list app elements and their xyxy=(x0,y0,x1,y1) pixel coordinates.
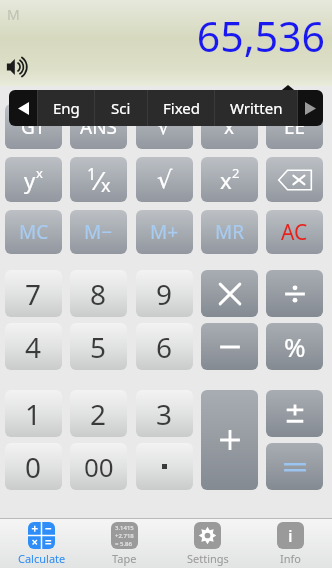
button[interactable]: 4 xyxy=(5,323,62,370)
staticText: GT xyxy=(21,114,46,140)
button[interactable]: 1 xyxy=(70,157,127,202)
button[interactable]: Subtract xyxy=(201,323,258,370)
button[interactable]: 00 xyxy=(70,443,127,490)
staticText: 1 xyxy=(87,163,97,185)
staticText: MC xyxy=(19,219,49,245)
staticText: 8 xyxy=(90,275,107,313)
staticText: 0 xyxy=(25,448,42,486)
button[interactable]: 1 xyxy=(5,390,62,437)
button[interactable]: 8 xyxy=(70,270,127,317)
other: Divide xyxy=(282,281,308,307)
button[interactable]: Delete xyxy=(266,157,323,202)
button[interactable]: Fixed xyxy=(148,90,214,126)
button[interactable]: EE xyxy=(266,104,323,149)
button[interactable]: √ xyxy=(136,157,193,202)
button[interactable]: 2 xyxy=(70,390,127,437)
button[interactable]: Multiply xyxy=(201,270,258,317)
button[interactable]: x xyxy=(201,157,258,202)
other: Equals xyxy=(282,459,308,475)
button[interactable]: Previous xyxy=(9,90,37,126)
button[interactable]: 7 xyxy=(5,270,62,317)
staticText: Settings xyxy=(187,551,229,566)
button[interactable]: Add xyxy=(201,390,258,490)
staticText: √ xyxy=(158,116,171,138)
staticText: % xyxy=(284,329,306,364)
staticText: = 5.86 xyxy=(115,540,132,548)
button[interactable]: Written xyxy=(215,90,297,126)
button[interactable]: MC xyxy=(5,210,62,254)
staticText: Eng xyxy=(53,98,80,118)
button[interactable]: Info xyxy=(249,519,332,568)
staticText: x xyxy=(36,164,43,182)
staticText: 9 xyxy=(156,275,173,313)
staticText: Info xyxy=(280,551,301,566)
staticText: +2.718 xyxy=(115,532,134,540)
button[interactable]: ANS xyxy=(70,104,127,149)
button[interactable]: 6 xyxy=(136,323,193,370)
button[interactable]: M− xyxy=(70,210,127,254)
staticText: i xyxy=(288,524,293,547)
button[interactable]: Sci xyxy=(95,90,147,126)
staticText: 5 xyxy=(90,328,107,366)
button[interactable]: x xyxy=(201,104,258,149)
staticText: 65,536 xyxy=(196,8,325,64)
button[interactable]: M+ xyxy=(136,210,193,254)
other: Subtract xyxy=(217,334,243,360)
button[interactable]: 5 xyxy=(70,323,127,370)
staticText: 3 xyxy=(156,395,173,433)
button[interactable]: Next xyxy=(298,90,323,126)
button[interactable]: √ xyxy=(136,104,193,149)
button[interactable]: Eng xyxy=(38,90,94,126)
staticText: EE xyxy=(284,114,306,140)
staticText: x xyxy=(224,114,235,140)
button[interactable]: GT xyxy=(5,104,62,149)
button[interactable]: Plus minus xyxy=(266,390,323,437)
staticText: 3.1415 xyxy=(115,524,134,532)
other: Add xyxy=(217,427,243,453)
staticText: x xyxy=(101,173,111,198)
staticText: 6 xyxy=(156,328,173,366)
staticText: 4 xyxy=(25,328,42,366)
staticText: ⁄ xyxy=(97,162,101,197)
button[interactable]: Calculate xyxy=(0,519,83,568)
other: Delete xyxy=(278,169,312,191)
button[interactable]: Equals xyxy=(266,443,323,490)
button[interactable]: Divide xyxy=(266,270,323,317)
staticText: 7 xyxy=(25,275,42,313)
button[interactable]: 9 xyxy=(136,270,193,317)
other: Multiply xyxy=(217,281,243,307)
staticText: ANS xyxy=(80,114,118,140)
button[interactable]: % xyxy=(266,323,323,370)
staticText: 2 xyxy=(90,395,107,433)
staticText: x xyxy=(220,165,232,195)
staticText: Written xyxy=(230,98,283,118)
staticText: √ xyxy=(157,166,173,194)
button[interactable] xyxy=(136,443,193,490)
other: Settings xyxy=(194,522,221,549)
button[interactable]: 3.1415 xyxy=(83,519,166,568)
staticText: Calculate xyxy=(18,551,66,566)
button[interactable]: y xyxy=(5,157,62,202)
button[interactable]: 3 xyxy=(136,390,193,437)
staticText: Tape xyxy=(112,551,137,566)
staticText: 1 xyxy=(25,395,42,433)
staticText: M xyxy=(7,5,20,24)
other: Sound xyxy=(6,57,28,77)
staticText: Sci xyxy=(111,98,131,118)
staticText: MR xyxy=(215,219,245,245)
staticText: M+ xyxy=(150,219,179,245)
staticText: AC xyxy=(281,218,308,247)
button[interactable]: MR xyxy=(201,210,258,254)
other: Info xyxy=(277,522,304,549)
staticText: Fixed xyxy=(163,98,200,118)
other: Plus minus xyxy=(282,402,308,426)
button[interactable]: 0 xyxy=(5,443,62,490)
staticText: 00 xyxy=(84,449,114,484)
staticText: M− xyxy=(84,219,113,245)
staticText: y xyxy=(24,165,36,195)
button[interactable]: Settings xyxy=(166,519,249,568)
button[interactable]: AC xyxy=(266,210,323,254)
staticText: 2 xyxy=(232,164,240,182)
